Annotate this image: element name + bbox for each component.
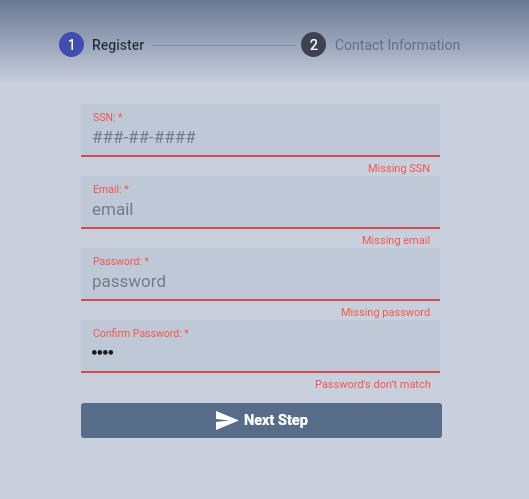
button[interactable]: Email: * [81, 176, 440, 227]
button[interactable]: Send [81, 403, 442, 438]
button[interactable]: SSN: * [81, 104, 440, 155]
button[interactable]: 2 [301, 32, 461, 57]
staticText: Next Step [244, 412, 308, 429]
staticText: Email: * [93, 183, 129, 195]
staticText: email [92, 199, 134, 219]
button[interactable]: Password: * [81, 248, 440, 299]
button[interactable]: Confirm Password: * [81, 320, 440, 371]
staticText: SSN: * [93, 111, 123, 123]
staticText: Missing email [362, 234, 431, 247]
other: Send [216, 411, 239, 430]
staticText: Password's don't match [315, 378, 431, 391]
staticText: Password: * [93, 255, 150, 267]
staticText: Confirm Password: * [93, 327, 189, 339]
staticText: Missing SSN [368, 162, 431, 175]
staticText: 1 [68, 37, 76, 53]
staticText: 2 [310, 37, 318, 53]
staticText: password [92, 271, 167, 291]
staticText: Register [92, 37, 145, 53]
button[interactable]: 1 [59, 32, 145, 57]
staticText: Missing password [341, 306, 431, 319]
staticText: Contact Information [335, 37, 461, 53]
staticText: ###-##-#### [92, 127, 196, 147]
